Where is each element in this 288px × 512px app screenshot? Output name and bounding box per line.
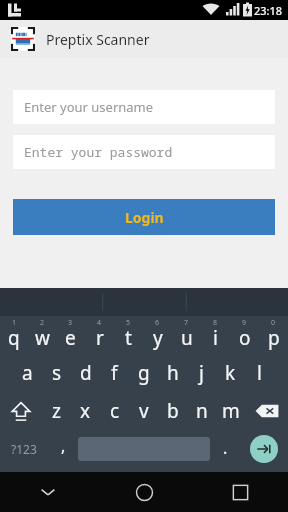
button[interactable]: Shift [0,392,42,430]
button[interactable]: 3 [56,316,85,354]
button[interactable]: f [100,354,129,392]
button[interactable]: 5 [114,316,143,354]
button[interactable]: k [216,354,245,392]
staticText: 9 [242,318,247,328]
button[interactable]: , [48,430,78,468]
staticText: u [181,325,193,351]
button[interactable]: l [245,354,274,392]
button[interactable]: g [129,354,158,392]
staticText: c [110,398,120,424]
button[interactable]: x [71,392,100,430]
staticText: d [80,360,92,386]
button[interactable]: Enter [250,435,278,463]
staticText: v [139,398,149,424]
staticText: 5 [126,318,131,328]
staticText: 2 [40,318,45,328]
staticText: p [268,325,280,351]
staticText: s [52,360,62,386]
staticText: Preptix Scanner [46,30,150,49]
staticText: o [239,325,251,351]
staticText: y [153,325,163,351]
button[interactable]: z [42,392,71,430]
staticText: t [125,325,132,351]
staticText: 6 [155,318,160,328]
staticText: w [35,325,50,351]
button[interactable]: m [216,392,245,430]
staticText: , [61,435,66,457]
staticText: h [167,360,179,386]
button[interactable]: j [187,354,216,392]
staticText: e [65,325,76,351]
button[interactable]: 0 [259,316,288,354]
staticText: 23:18 [254,3,283,18]
staticText: l [257,360,262,386]
button[interactable]: . [210,430,240,468]
button[interactable]: 8 [201,316,230,354]
staticText: 7 [184,318,189,328]
button[interactable]: 1 [0,316,28,354]
button[interactable]: a [13,354,42,392]
button[interactable]: Login [13,199,275,235]
staticText: Enter your username [24,98,154,116]
staticText: ?123 [11,441,37,457]
staticText: a [22,360,33,386]
staticText: k [225,360,236,386]
staticText: g [138,360,150,386]
button[interactable]: 2 [28,316,56,354]
button[interactable]: n [187,392,216,430]
staticText: x [80,398,91,424]
staticText: m [222,398,240,424]
staticText: 8 [213,318,218,328]
staticText: q [8,325,20,351]
button[interactable]: h [158,354,187,392]
button[interactable]: ?123 [0,430,48,468]
button[interactable]: c [100,392,129,430]
button[interactable]: v [129,392,158,430]
button[interactable]: Recents [192,472,288,512]
button[interactable]: Enter your username [13,90,275,124]
button[interactable]: d [71,354,100,392]
staticText: Login [125,208,164,227]
staticText: i [213,325,218,351]
staticText: 0 [271,318,276,328]
staticText: f [111,360,118,386]
staticText: . [223,437,228,459]
button[interactable]: b [158,392,187,430]
button[interactable]: Backspace [245,392,288,430]
button[interactable]: 7 [172,316,201,354]
staticText: z [52,398,61,424]
button[interactable]: Hide keyboard [0,472,96,512]
button[interactable]: Enter your password [13,135,275,169]
button[interactable]: 4 [85,316,114,354]
staticText: Enter your password [24,143,173,161]
staticText: b [167,398,179,424]
button[interactable]: s [42,354,71,392]
staticText: 1 [12,318,17,328]
staticText: 4 [97,318,102,328]
staticText: n [196,398,208,424]
staticText: j [199,360,204,386]
staticText: 3 [68,318,73,328]
button[interactable]: 9 [230,316,259,354]
staticText: r [96,325,104,351]
button[interactable]: Home [96,472,192,512]
button[interactable]: 6 [143,316,172,354]
